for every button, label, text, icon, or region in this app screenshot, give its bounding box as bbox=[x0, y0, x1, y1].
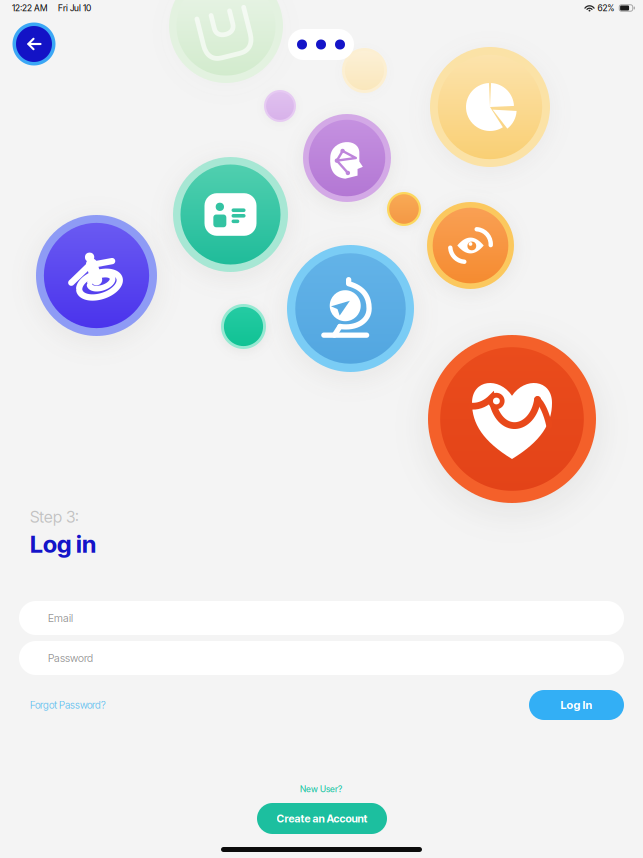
button[interactable]: Create an Account bbox=[257, 803, 387, 834]
staticText: Create an Account bbox=[276, 812, 367, 825]
staticText: Fri Jul 10 bbox=[58, 3, 91, 13]
button[interactable]: Forgot Password? bbox=[30, 699, 150, 711]
button[interactable]: New User? bbox=[251, 783, 391, 795]
staticText: Step 3: bbox=[30, 507, 79, 527]
staticText: Forgot Password? bbox=[30, 699, 106, 711]
staticText: 12:22 AM bbox=[12, 3, 47, 13]
staticText: Log in bbox=[30, 529, 96, 558]
button[interactable]: Log In bbox=[529, 690, 624, 720]
button[interactable]: Back bbox=[12, 22, 56, 66]
staticText: Log In bbox=[560, 698, 592, 712]
staticText: 62% bbox=[597, 3, 614, 13]
staticText: Email bbox=[48, 611, 73, 624]
button[interactable]: More options bbox=[288, 29, 354, 60]
staticText: New User? bbox=[300, 784, 342, 794]
staticText: Password bbox=[48, 651, 93, 664]
